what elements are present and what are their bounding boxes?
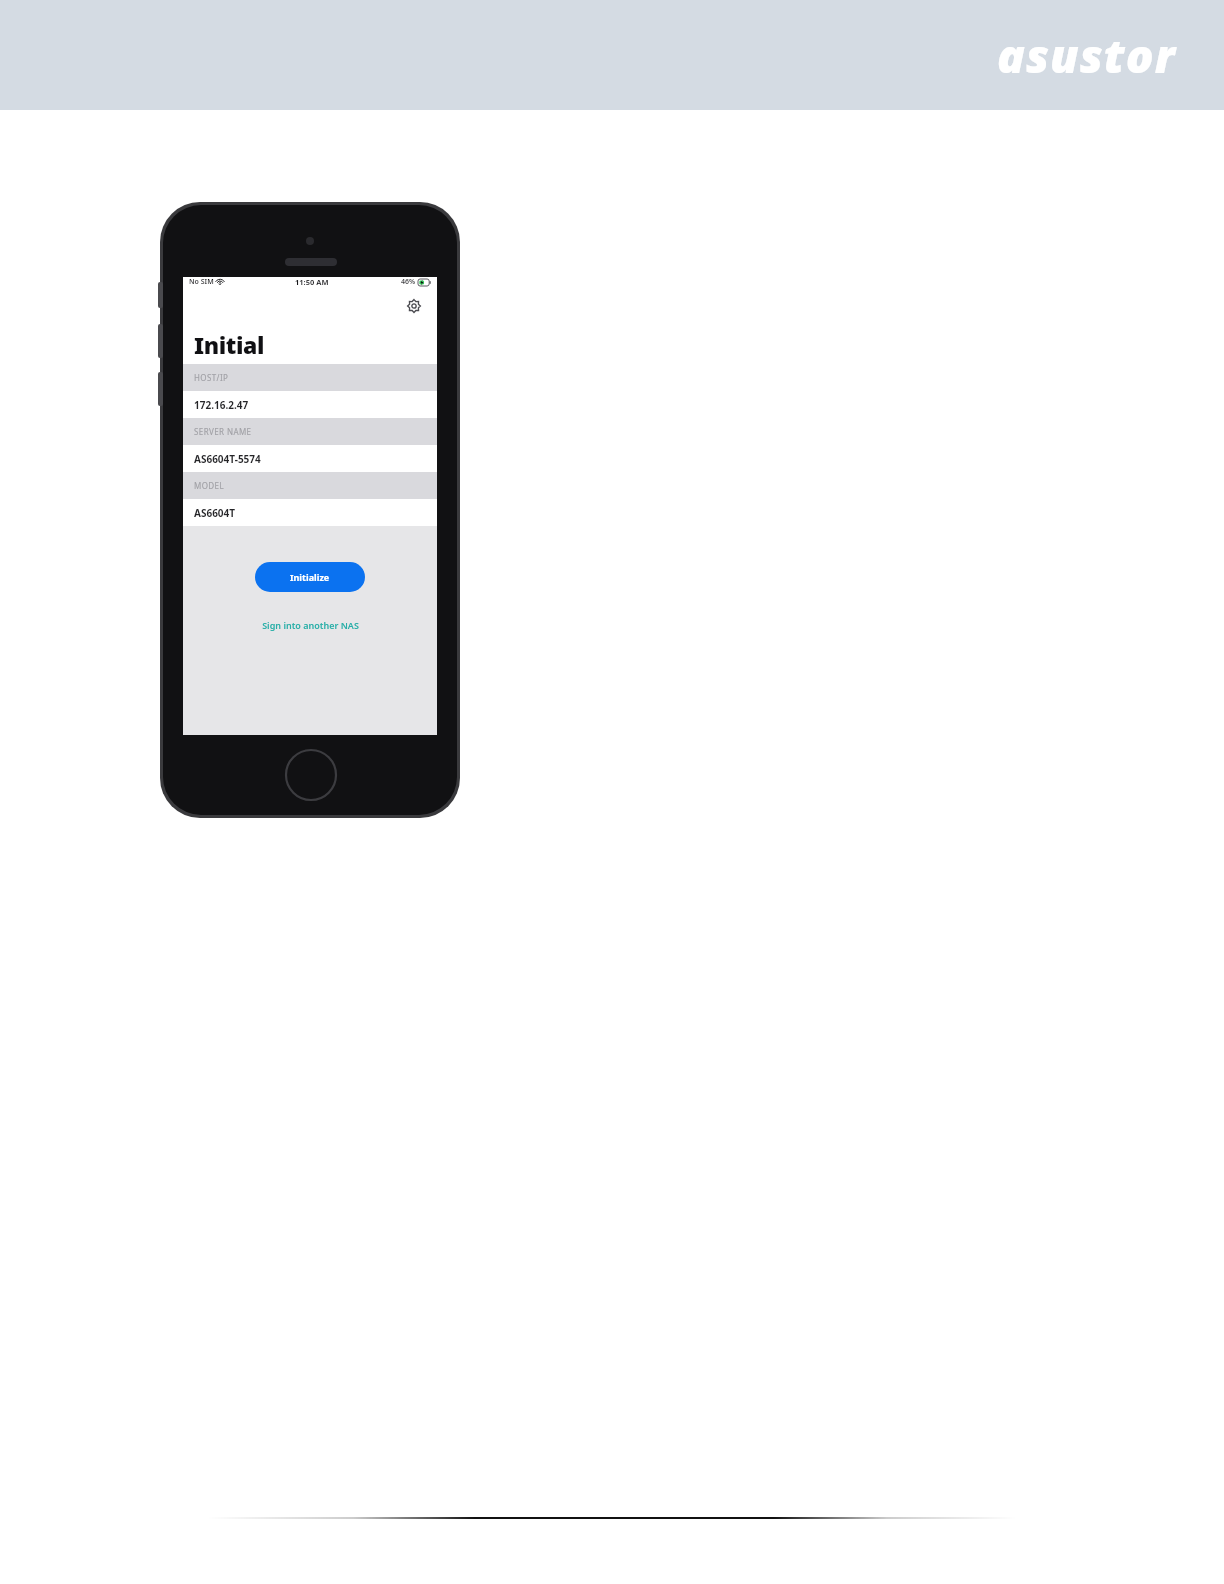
button[interactable]: Sign into another NAS bbox=[254, 616, 367, 634]
staticText: 11:50 AM bbox=[295, 277, 329, 287]
staticText: AS6604T bbox=[194, 506, 236, 520]
button[interactable]: AS6604T-5574 bbox=[183, 445, 437, 472]
staticText: HOST/IP bbox=[194, 372, 229, 383]
staticText: MODEL bbox=[194, 480, 224, 491]
button[interactable]: Settings bbox=[403, 295, 425, 317]
staticText: asustor bbox=[997, 24, 1176, 87]
staticText: Initial bbox=[194, 329, 265, 360]
button[interactable]: AS6604T bbox=[183, 499, 437, 526]
staticText: SERVER NAME bbox=[194, 426, 252, 437]
staticText: 172.16.2.47 bbox=[194, 398, 249, 412]
button[interactable]: Initialize bbox=[255, 562, 365, 592]
staticText: AS6604T-5574 bbox=[194, 452, 261, 466]
staticText: 46% bbox=[401, 277, 416, 287]
staticText: Sign into another NAS bbox=[262, 619, 359, 631]
button[interactable]: 172.16.2.47 bbox=[183, 391, 437, 418]
staticText: No SIM bbox=[189, 277, 214, 287]
staticText: Initialize bbox=[290, 571, 330, 583]
